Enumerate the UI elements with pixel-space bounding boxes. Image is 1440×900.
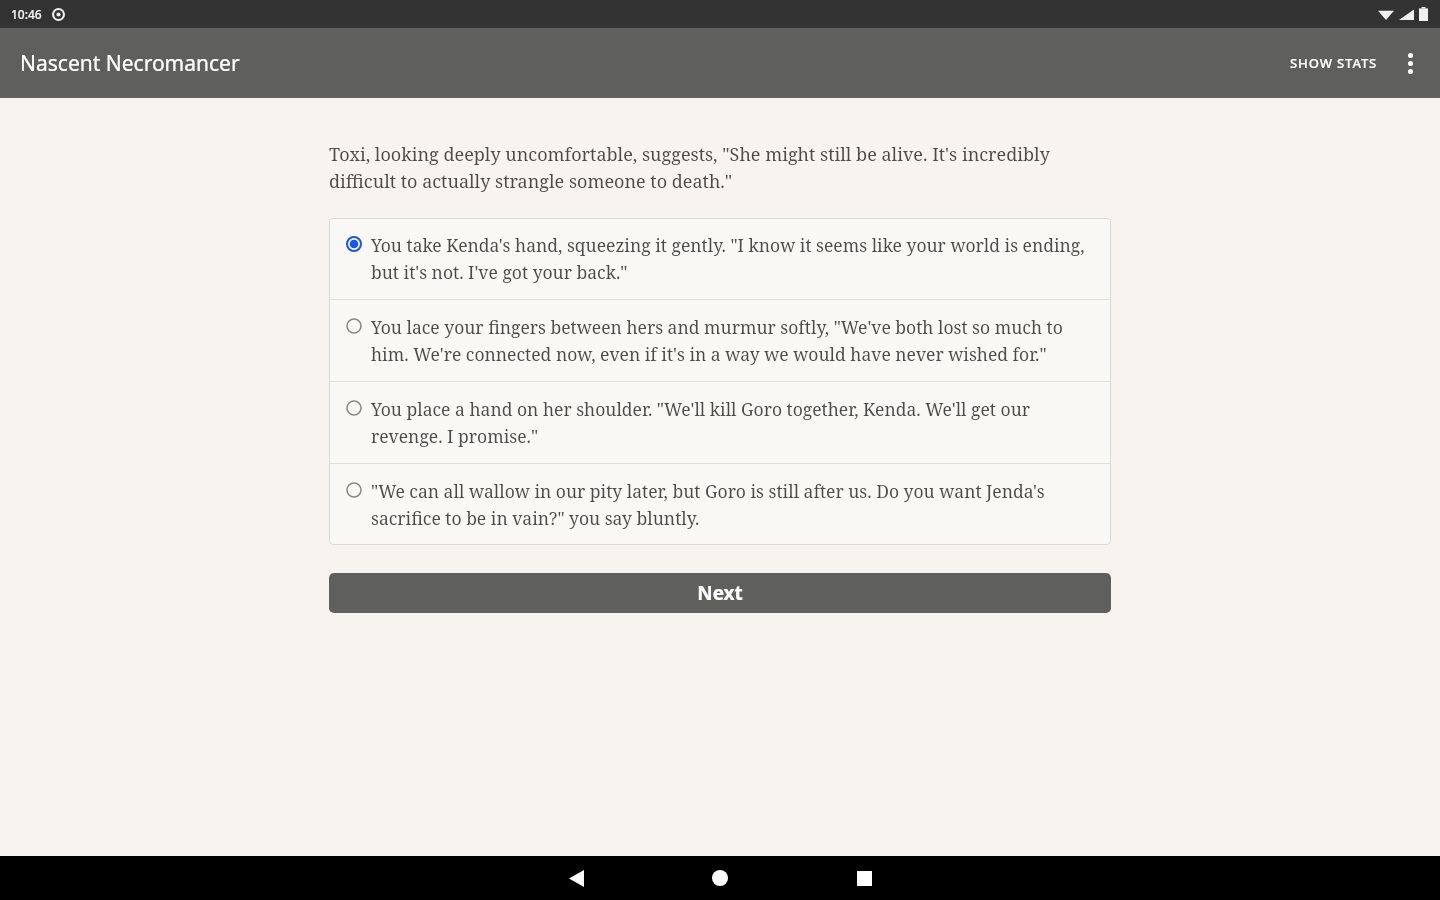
button[interactable]: Recent apps — [828, 856, 900, 900]
button[interactable]: SHOW STATS — [1280, 44, 1388, 82]
staticText: You take Kenda's hand, squeezing it gent… — [371, 233, 1097, 284]
button[interactable]: Next — [329, 573, 1111, 613]
staticText: You place a hand on her shoulder. "We'll… — [371, 397, 1097, 448]
button[interactable]: "We can all wallow in our pity later, bu… — [329, 464, 1111, 545]
staticText: SHOW STATS — [1290, 54, 1378, 72]
button[interactable]: You take Kenda's hand, squeezing it gent… — [329, 218, 1111, 299]
button[interactable]: Back — [540, 856, 612, 900]
button[interactable]: You place a hand on her shoulder. "We'll… — [329, 382, 1111, 463]
staticText: Nascent Necromancer — [20, 49, 240, 78]
staticText: Next — [697, 580, 743, 606]
staticText: "We can all wallow in our pity later, bu… — [371, 479, 1097, 530]
button[interactable]: You lace your fingers between hers and m… — [329, 300, 1111, 381]
button[interactable]: More options — [1388, 41, 1432, 85]
staticText: You lace your fingers between hers and m… — [371, 315, 1097, 366]
staticText: Toxi, looking deeply uncomfortable, sugg… — [329, 142, 1111, 193]
staticText: 10:46 — [11, 6, 42, 22]
button[interactable]: Home — [684, 856, 756, 900]
